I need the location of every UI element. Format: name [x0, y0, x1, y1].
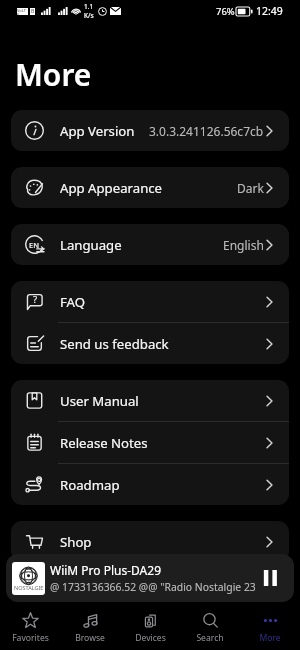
staticText: FAQ	[60, 293, 86, 311]
staticText: K/s	[84, 11, 94, 20]
button[interactable]: More	[240, 608, 300, 648]
staticText: Roadmap	[60, 476, 120, 494]
staticText: 12:49	[256, 4, 283, 18]
staticText: 76%	[216, 5, 235, 18]
staticText: App Version	[60, 122, 135, 140]
button[interactable]: Browse	[60, 608, 120, 648]
button[interactable]: EN	[11, 224, 289, 265]
staticText: Language	[60, 236, 122, 254]
button[interactable]: App Version	[11, 110, 289, 151]
button[interactable]: ?	[11, 281, 289, 322]
staticText: Shop	[60, 533, 92, 551]
staticText: Release Notes	[60, 434, 148, 452]
button[interactable]: Favorites	[0, 608, 60, 648]
staticText: Devices	[135, 632, 166, 644]
button[interactable]: Roadmap	[11, 464, 289, 505]
staticText: EN	[29, 240, 39, 250]
staticText: 1.1	[84, 2, 94, 11]
staticText: @ 1733136366.52 @@ "Radio Nostalgie 23	[50, 580, 256, 594]
staticText: Send us feedback	[60, 335, 169, 353]
staticText: English	[223, 237, 264, 253]
staticText: 3.0.3.241126.56c7cb	[149, 123, 264, 139]
staticText: Dark	[237, 180, 264, 196]
button[interactable]: Send us feedback	[11, 323, 289, 364]
staticText: NOSTALGIE	[14, 584, 44, 591]
staticText: App Appearance	[60, 179, 163, 197]
button[interactable]: App Appearance	[11, 167, 289, 208]
button[interactable]: Search	[180, 608, 240, 648]
staticText: B	[31, 8, 35, 15]
staticText: WiiM Pro Plus-DA29	[50, 562, 162, 578]
button[interactable]: Shop	[11, 521, 289, 562]
staticText: Search	[196, 632, 224, 644]
staticText: More	[259, 632, 281, 644]
staticText: More	[15, 54, 92, 95]
button[interactable]: Release Notes	[11, 422, 289, 463]
staticText: ?	[33, 293, 38, 306]
button[interactable]: User Manual	[11, 380, 289, 421]
staticText: Favorites	[12, 632, 49, 644]
staticText: Browse	[75, 632, 105, 644]
button[interactable]: Pause	[256, 554, 294, 602]
staticText: User Manual	[60, 392, 139, 410]
staticText: VoLTE	[17, 8, 28, 15]
staticText: R A D I O	[22, 579, 36, 583]
button[interactable]: R A D I O	[6, 554, 294, 602]
button[interactable]: Devices	[120, 608, 180, 648]
